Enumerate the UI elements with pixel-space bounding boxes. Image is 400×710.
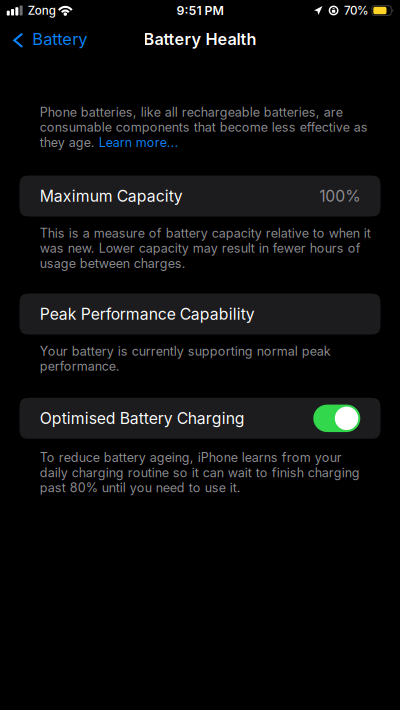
staticText: 70% xyxy=(344,3,369,17)
staticText: Maximum Capacity xyxy=(40,186,183,205)
staticText: 100% xyxy=(319,186,360,205)
staticText: 9:51 PM xyxy=(176,3,223,18)
button[interactable]: Learn more... xyxy=(99,135,179,150)
button[interactable]: Optimised Battery Charging xyxy=(0,398,380,439)
staticText: was new. Lower capacity may result in fe… xyxy=(40,241,361,256)
staticText: Zong xyxy=(28,3,56,17)
button[interactable]: Battery xyxy=(0,24,97,54)
button[interactable]: Maximum Capacity xyxy=(0,175,380,216)
staticText: Peak Performance Capability xyxy=(40,304,255,323)
staticText: This is a measure of battery capacity re… xyxy=(40,225,371,241)
staticText: they age. xyxy=(40,135,99,150)
staticText: To reduce battery ageing, iPhone learns … xyxy=(40,450,342,465)
staticText: Battery xyxy=(32,29,87,49)
staticText: Learn more... xyxy=(99,135,179,150)
staticText: daily charging routine so it can wait to… xyxy=(40,465,360,480)
staticText: performance. xyxy=(40,359,120,374)
staticText: past 80% until you need to use it. xyxy=(40,480,241,495)
staticText: Your battery is currently supporting nor… xyxy=(40,343,331,359)
staticText: Optimised Battery Charging xyxy=(40,409,245,428)
staticText: consumable components that become less e… xyxy=(40,120,368,135)
staticText: Phone batteries, like all rechargeable b… xyxy=(40,104,343,120)
button[interactable]: Peak Performance Capability xyxy=(0,293,380,334)
staticText: usage between charges. xyxy=(40,256,186,271)
staticText: Battery Health xyxy=(143,29,256,49)
